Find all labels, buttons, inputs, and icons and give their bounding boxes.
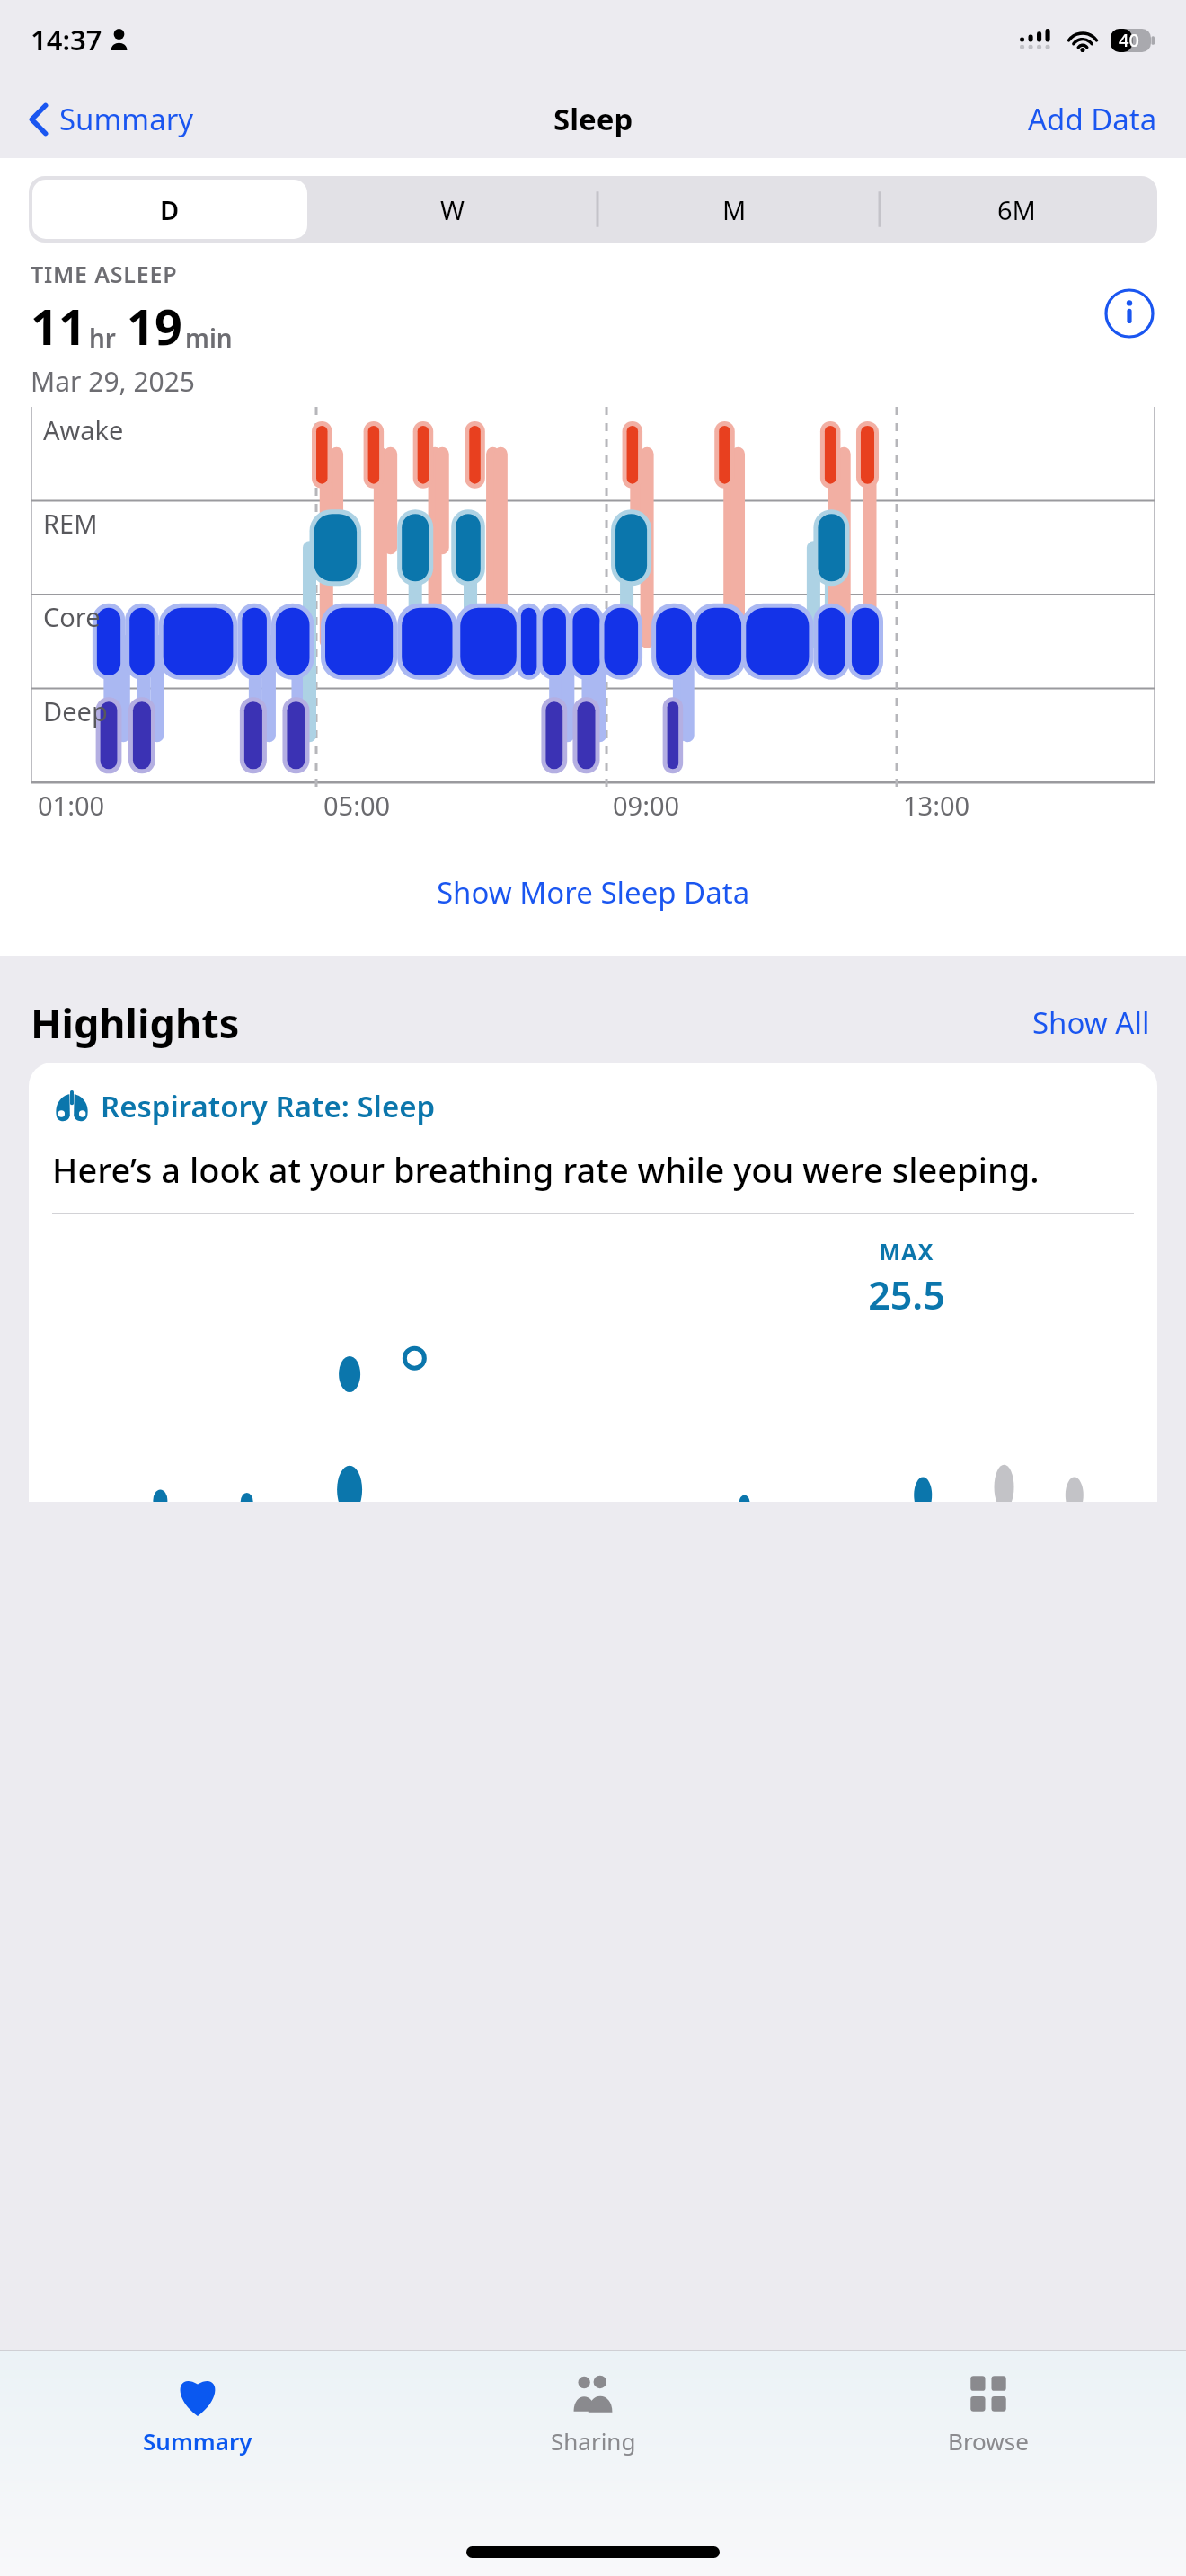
staticText: Add Data [1028,99,1157,139]
staticText: Awake [43,412,124,447]
staticText: Highlights [31,995,1027,1050]
button[interactable]: Add Data [1022,92,1163,146]
staticText: Browse [948,2425,1029,2457]
staticText: 13:00 [903,788,970,823]
button[interactable]: Browse [791,2371,1186,2457]
staticText: 05:00 [323,788,391,823]
staticText: M [722,192,747,227]
button[interactable]: Summary [23,92,199,146]
button[interactable]: About time asleep [1103,287,1155,340]
button[interactable]: Show All [1027,997,1155,1048]
staticText: 6M [997,192,1036,227]
staticText: Summary [59,99,194,139]
staticText: 14:37 [31,21,102,58]
staticText: Here’s a look at your breathing rate whi… [52,1146,1040,1193]
staticText: Sleep [553,99,633,139]
button[interactable]: Sharing [395,2371,791,2457]
staticText: 19 [127,293,182,359]
staticText: MAX [879,1236,934,1266]
button[interactable]: 6M [875,176,1157,243]
button[interactable]: Respiratory Rate: Sleep [29,1063,1157,1502]
button[interactable]: Show More Sleep Data [0,865,1186,920]
staticText: hr [89,321,117,355]
button[interactable]: W [311,176,593,243]
staticText: Show All [1032,1002,1150,1043]
staticText: TIME ASLEEP [31,259,178,289]
button[interactable]: D [29,176,311,243]
staticText: Sharing [551,2425,636,2457]
staticText: Deep [43,693,108,728]
staticText: 11 [31,293,86,359]
staticText: Summary [143,2425,252,2457]
staticText: Show More Sleep Data [437,872,750,913]
staticText: 40 [1119,28,1139,52]
staticText: 09:00 [613,788,680,823]
staticText: D [160,192,180,227]
staticText: min [185,321,233,355]
staticText: Core [43,599,101,634]
staticText: 01:00 [38,788,105,823]
staticText: W [440,192,465,227]
button[interactable]: Summary [0,2371,395,2457]
staticText: Mar 29, 2025 [31,363,196,400]
button[interactable]: M [593,176,875,243]
staticText: Respiratory Rate: Sleep [101,1086,436,1126]
staticText: 25.5 [868,1268,945,1321]
staticText: REM [43,506,98,541]
